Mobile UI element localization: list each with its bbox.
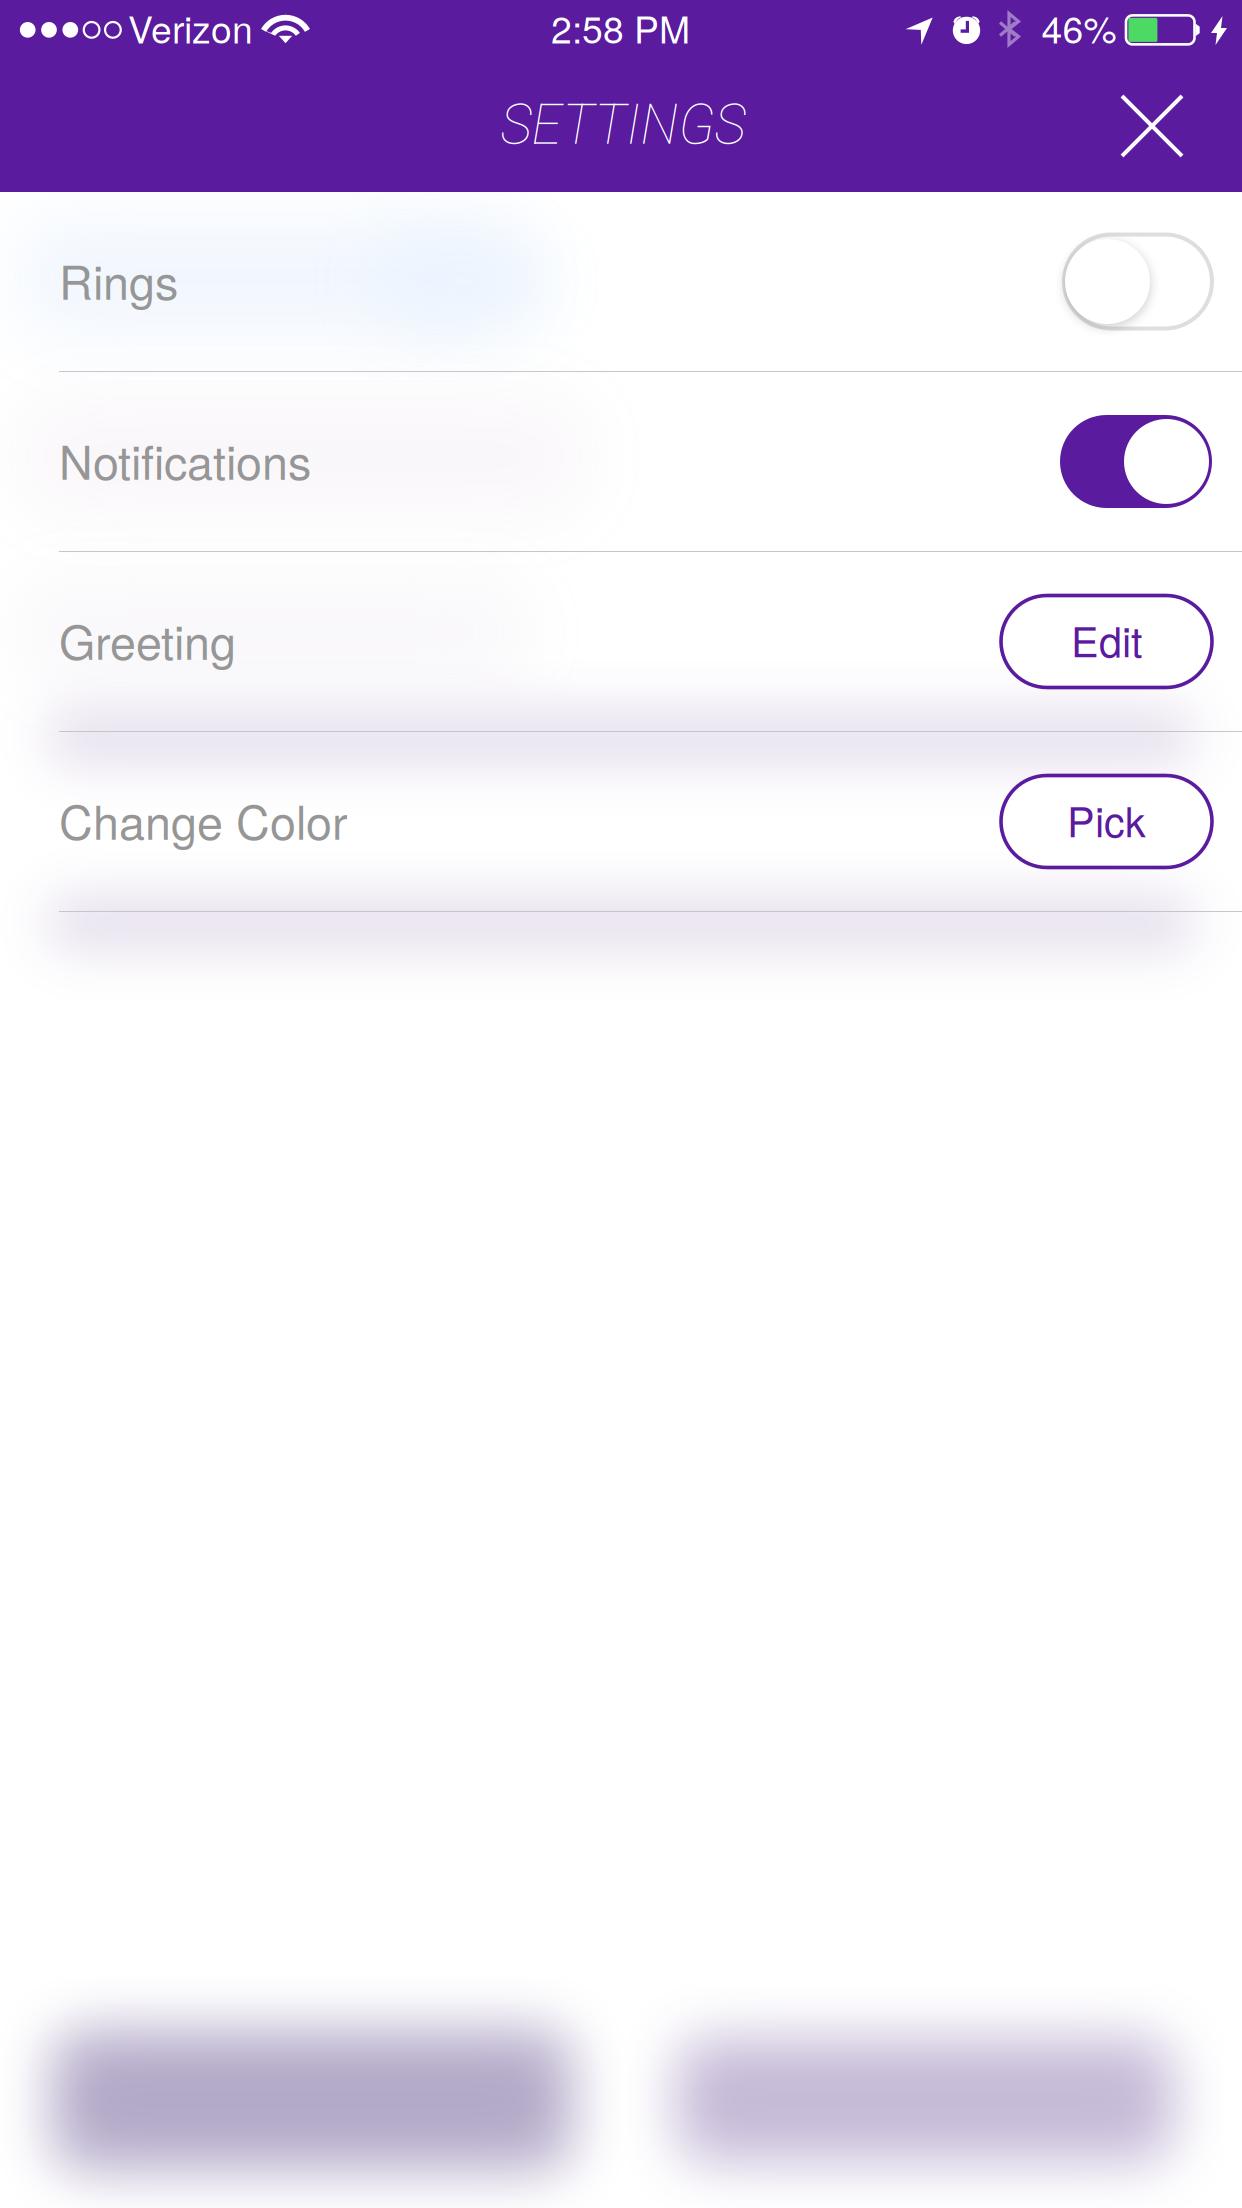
- button[interactable]: Pick: [1001, 775, 1212, 867]
- staticText: Edit: [1071, 610, 1142, 669]
- staticText: Verizon: [128, 1, 253, 54]
- staticText: Pick: [1067, 790, 1146, 849]
- button[interactable]: Notifications: [0, 372, 1242, 552]
- staticText: Greeting: [59, 606, 236, 673]
- button[interactable]: Close: [1090, 64, 1214, 188]
- button[interactable]: Rings: [0, 192, 1242, 372]
- staticText: Rings: [59, 246, 178, 313]
- button[interactable]: Change Color: [0, 732, 1242, 912]
- staticText: 46%: [1041, 1, 1116, 54]
- staticText: Change Color: [59, 786, 348, 853]
- button[interactable]: Greeting: [0, 552, 1242, 732]
- staticText: 2:58 PM: [551, 1, 690, 54]
- staticText: SETTINGS: [500, 93, 745, 157]
- button[interactable]: Edit: [1001, 595, 1212, 687]
- staticText: Notifications: [59, 426, 311, 493]
